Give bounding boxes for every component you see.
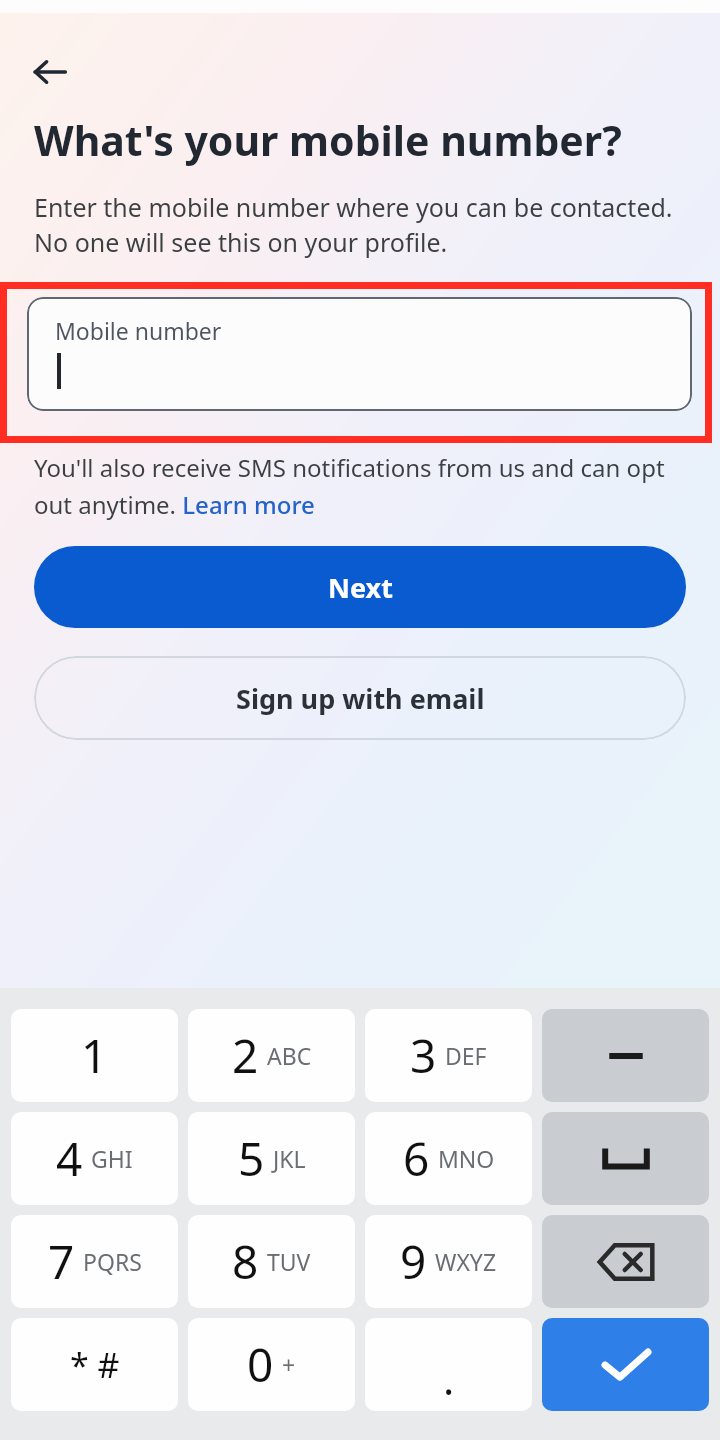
staticText: Sign up with email bbox=[236, 680, 485, 717]
button[interactable]: . bbox=[365, 1318, 532, 1411]
staticText: 2 bbox=[232, 1024, 259, 1087]
button[interactable]: Mobile number bbox=[27, 297, 692, 411]
button[interactable]: Sign up with email bbox=[34, 656, 686, 740]
staticText: DEF bbox=[445, 1040, 487, 1071]
staticText: MNO bbox=[438, 1143, 495, 1174]
button[interactable]: Backspace bbox=[542, 1215, 709, 1308]
button[interactable]: Space bbox=[542, 1112, 709, 1205]
button[interactable]: 7 bbox=[11, 1215, 178, 1308]
staticText: Enter the mobile number where you can be… bbox=[34, 190, 692, 260]
button[interactable]: 2 bbox=[188, 1009, 355, 1102]
staticText: 7 bbox=[48, 1230, 75, 1293]
staticText: 6 bbox=[403, 1127, 430, 1190]
staticText: PQRS bbox=[83, 1246, 142, 1277]
staticText: JKL bbox=[273, 1143, 306, 1174]
button[interactable]: 8 bbox=[188, 1215, 355, 1308]
staticText: + bbox=[282, 1349, 296, 1380]
button[interactable]: Back bbox=[24, 46, 76, 98]
button[interactable]: Enter bbox=[542, 1318, 709, 1411]
staticText: Mobile number bbox=[55, 315, 222, 346]
staticText: 1 bbox=[81, 1024, 108, 1087]
staticText: 5 bbox=[238, 1127, 265, 1190]
staticText: You'll also receive SMS notifications fr… bbox=[34, 451, 696, 521]
button[interactable]: 1 bbox=[11, 1009, 178, 1102]
staticText: 9 bbox=[400, 1230, 427, 1293]
staticText: 0 bbox=[247, 1333, 274, 1396]
staticText: . bbox=[443, 1350, 455, 1407]
staticText: 4 bbox=[56, 1127, 83, 1190]
button[interactable]: 9 bbox=[365, 1215, 532, 1308]
staticText: GHI bbox=[91, 1143, 133, 1174]
button[interactable]: 3 bbox=[365, 1009, 532, 1102]
button[interactable]: 0 bbox=[188, 1318, 355, 1411]
button[interactable]: * # bbox=[11, 1318, 178, 1411]
staticText: Next bbox=[328, 569, 393, 606]
button[interactable]: 5 bbox=[188, 1112, 355, 1205]
staticText: ABC bbox=[267, 1040, 312, 1071]
staticText: 8 bbox=[232, 1230, 259, 1293]
staticText: 3 bbox=[410, 1024, 437, 1087]
button[interactable]: Dash bbox=[542, 1009, 709, 1102]
button[interactable]: 6 bbox=[365, 1112, 532, 1205]
staticText: TUV bbox=[267, 1246, 311, 1277]
staticText: WXYZ bbox=[435, 1246, 497, 1277]
button[interactable]: 4 bbox=[11, 1112, 178, 1205]
staticText: * # bbox=[70, 1342, 120, 1388]
button[interactable]: Next bbox=[34, 546, 686, 628]
staticText: What's your mobile number? bbox=[34, 112, 622, 168]
